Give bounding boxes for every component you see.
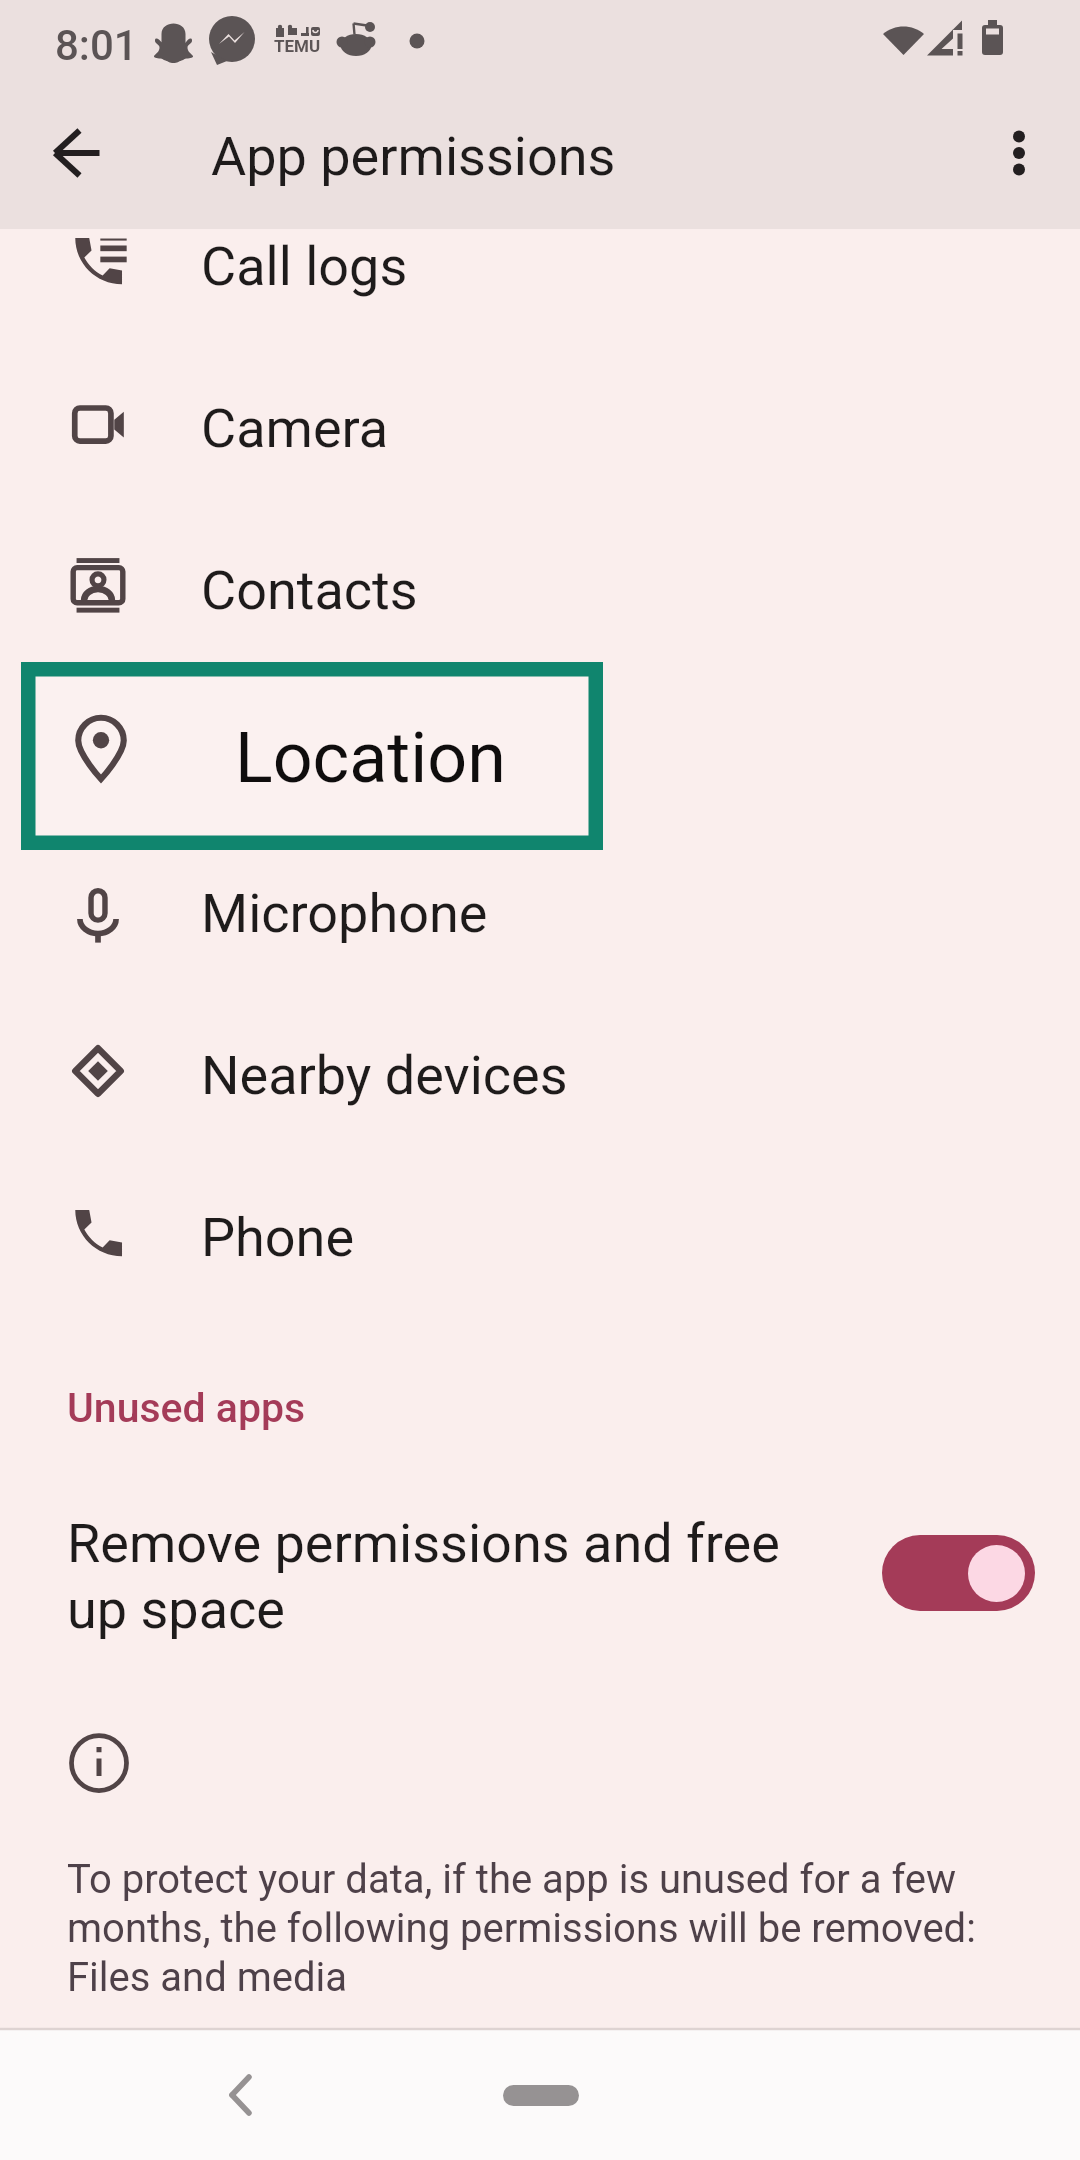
button[interactable] xyxy=(0,391,1080,553)
staticText: App permissions xyxy=(211,125,616,188)
button[interactable] xyxy=(0,1174,1080,1336)
staticText: Nearby devices xyxy=(201,1044,568,1107)
button[interactable] xyxy=(21,662,603,850)
button[interactable]: Home xyxy=(503,2085,579,2106)
staticText: 8:01 xyxy=(55,21,138,70)
staticText: Files and media xyxy=(67,1954,347,2001)
button[interactable] xyxy=(0,850,1080,1012)
staticText: Camera xyxy=(201,397,389,460)
staticText: Microphone xyxy=(201,882,488,945)
staticText: Contacts xyxy=(201,559,418,622)
button[interactable]: More options xyxy=(981,115,1057,191)
staticText: up space xyxy=(67,1578,285,1641)
button[interactable]: Remove permissions toggle xyxy=(882,1535,1035,1611)
staticText: Remove permissions and free xyxy=(67,1512,780,1575)
staticText: Call logs xyxy=(201,235,408,298)
button[interactable]: Back xyxy=(194,2049,286,2141)
button[interactable] xyxy=(0,553,1080,715)
staticText: months, the following permissions will b… xyxy=(67,1905,976,1952)
staticText: Location xyxy=(235,717,506,799)
staticText: Unused apps xyxy=(67,1384,306,1432)
staticText: TEMU xyxy=(274,36,321,56)
button[interactable] xyxy=(0,1480,1080,1670)
staticText: To protect your data, if the app is unus… xyxy=(67,1856,957,1903)
button[interactable] xyxy=(0,229,1080,391)
staticText: Phone xyxy=(201,1206,355,1269)
button[interactable]: Back xyxy=(31,107,123,199)
button[interactable] xyxy=(0,1012,1080,1174)
